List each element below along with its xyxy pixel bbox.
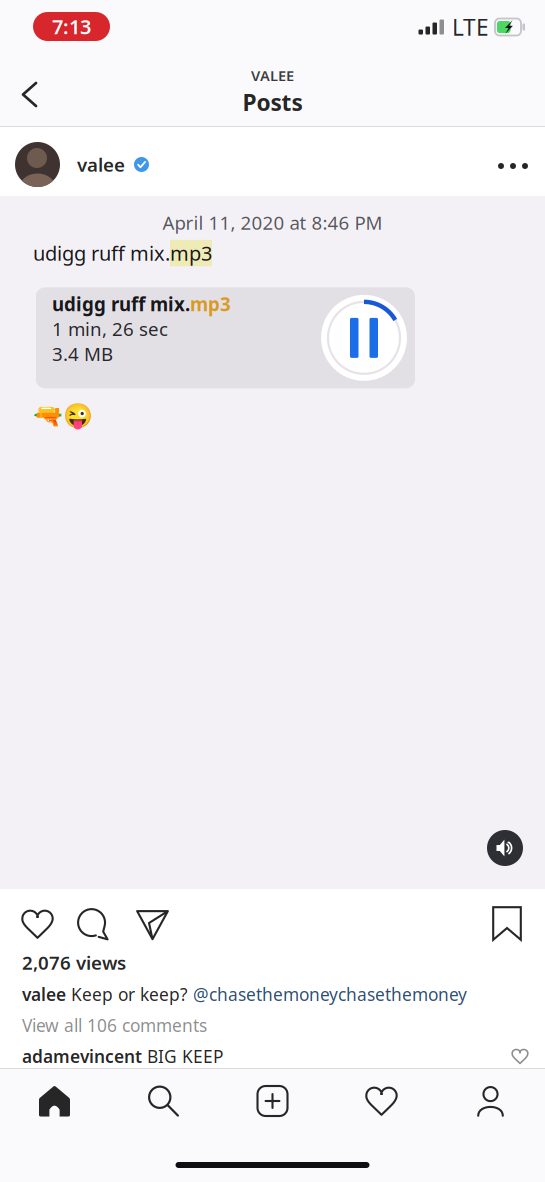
button[interactable]: New post (218, 1068, 327, 1134)
staticText: View all 106 comments (22, 1014, 207, 1037)
button[interactable]: valee (15, 136, 149, 187)
button[interactable]: Mute (487, 830, 523, 866)
staticText: mp3 (190, 292, 231, 316)
staticText: 🔫 (33, 402, 63, 430)
button[interactable]: Search (109, 1068, 218, 1134)
staticText: LTE (452, 12, 489, 42)
button[interactable]: Profile (436, 1068, 545, 1134)
button[interactable]: Like comment (512, 1048, 528, 1064)
staticText: Posts (242, 87, 302, 117)
staticText: April 11, 2020 at 8:46 PM (162, 210, 382, 235)
staticText: 3.4 MB (52, 341, 113, 366)
staticText: udigg ruff mix. (52, 292, 190, 316)
staticText: valee (22, 983, 66, 1006)
button[interactable]: Back (8, 65, 51, 118)
button[interactable]: Like (13, 891, 62, 947)
staticText: valee (77, 152, 125, 177)
button[interactable]: More options (485, 137, 541, 186)
button[interactable]: Share (121, 891, 181, 948)
staticText: mp3 (170, 240, 212, 266)
button[interactable]: Activity (327, 1068, 436, 1134)
staticText: @chasethemoneychasethemoney (193, 983, 467, 1006)
staticText: Keep or keep? (66, 983, 193, 1006)
staticText: 1 min, 26 sec (52, 316, 168, 341)
button[interactable]: Save (483, 890, 531, 949)
staticText: adamevincent (22, 1045, 142, 1068)
staticText: 7:13 (52, 13, 91, 40)
staticText: udigg ruff mix. (33, 240, 170, 266)
button[interactable]: Home (0, 1068, 109, 1134)
staticText: VALEE (251, 66, 294, 85)
staticText: 2,076 views (22, 950, 126, 975)
button[interactable]: View all 106 comments (22, 1006, 207, 1037)
staticText: 😜 (63, 402, 93, 430)
button[interactable]: Comment (62, 891, 121, 947)
staticText: BIG KEEP (142, 1045, 223, 1068)
